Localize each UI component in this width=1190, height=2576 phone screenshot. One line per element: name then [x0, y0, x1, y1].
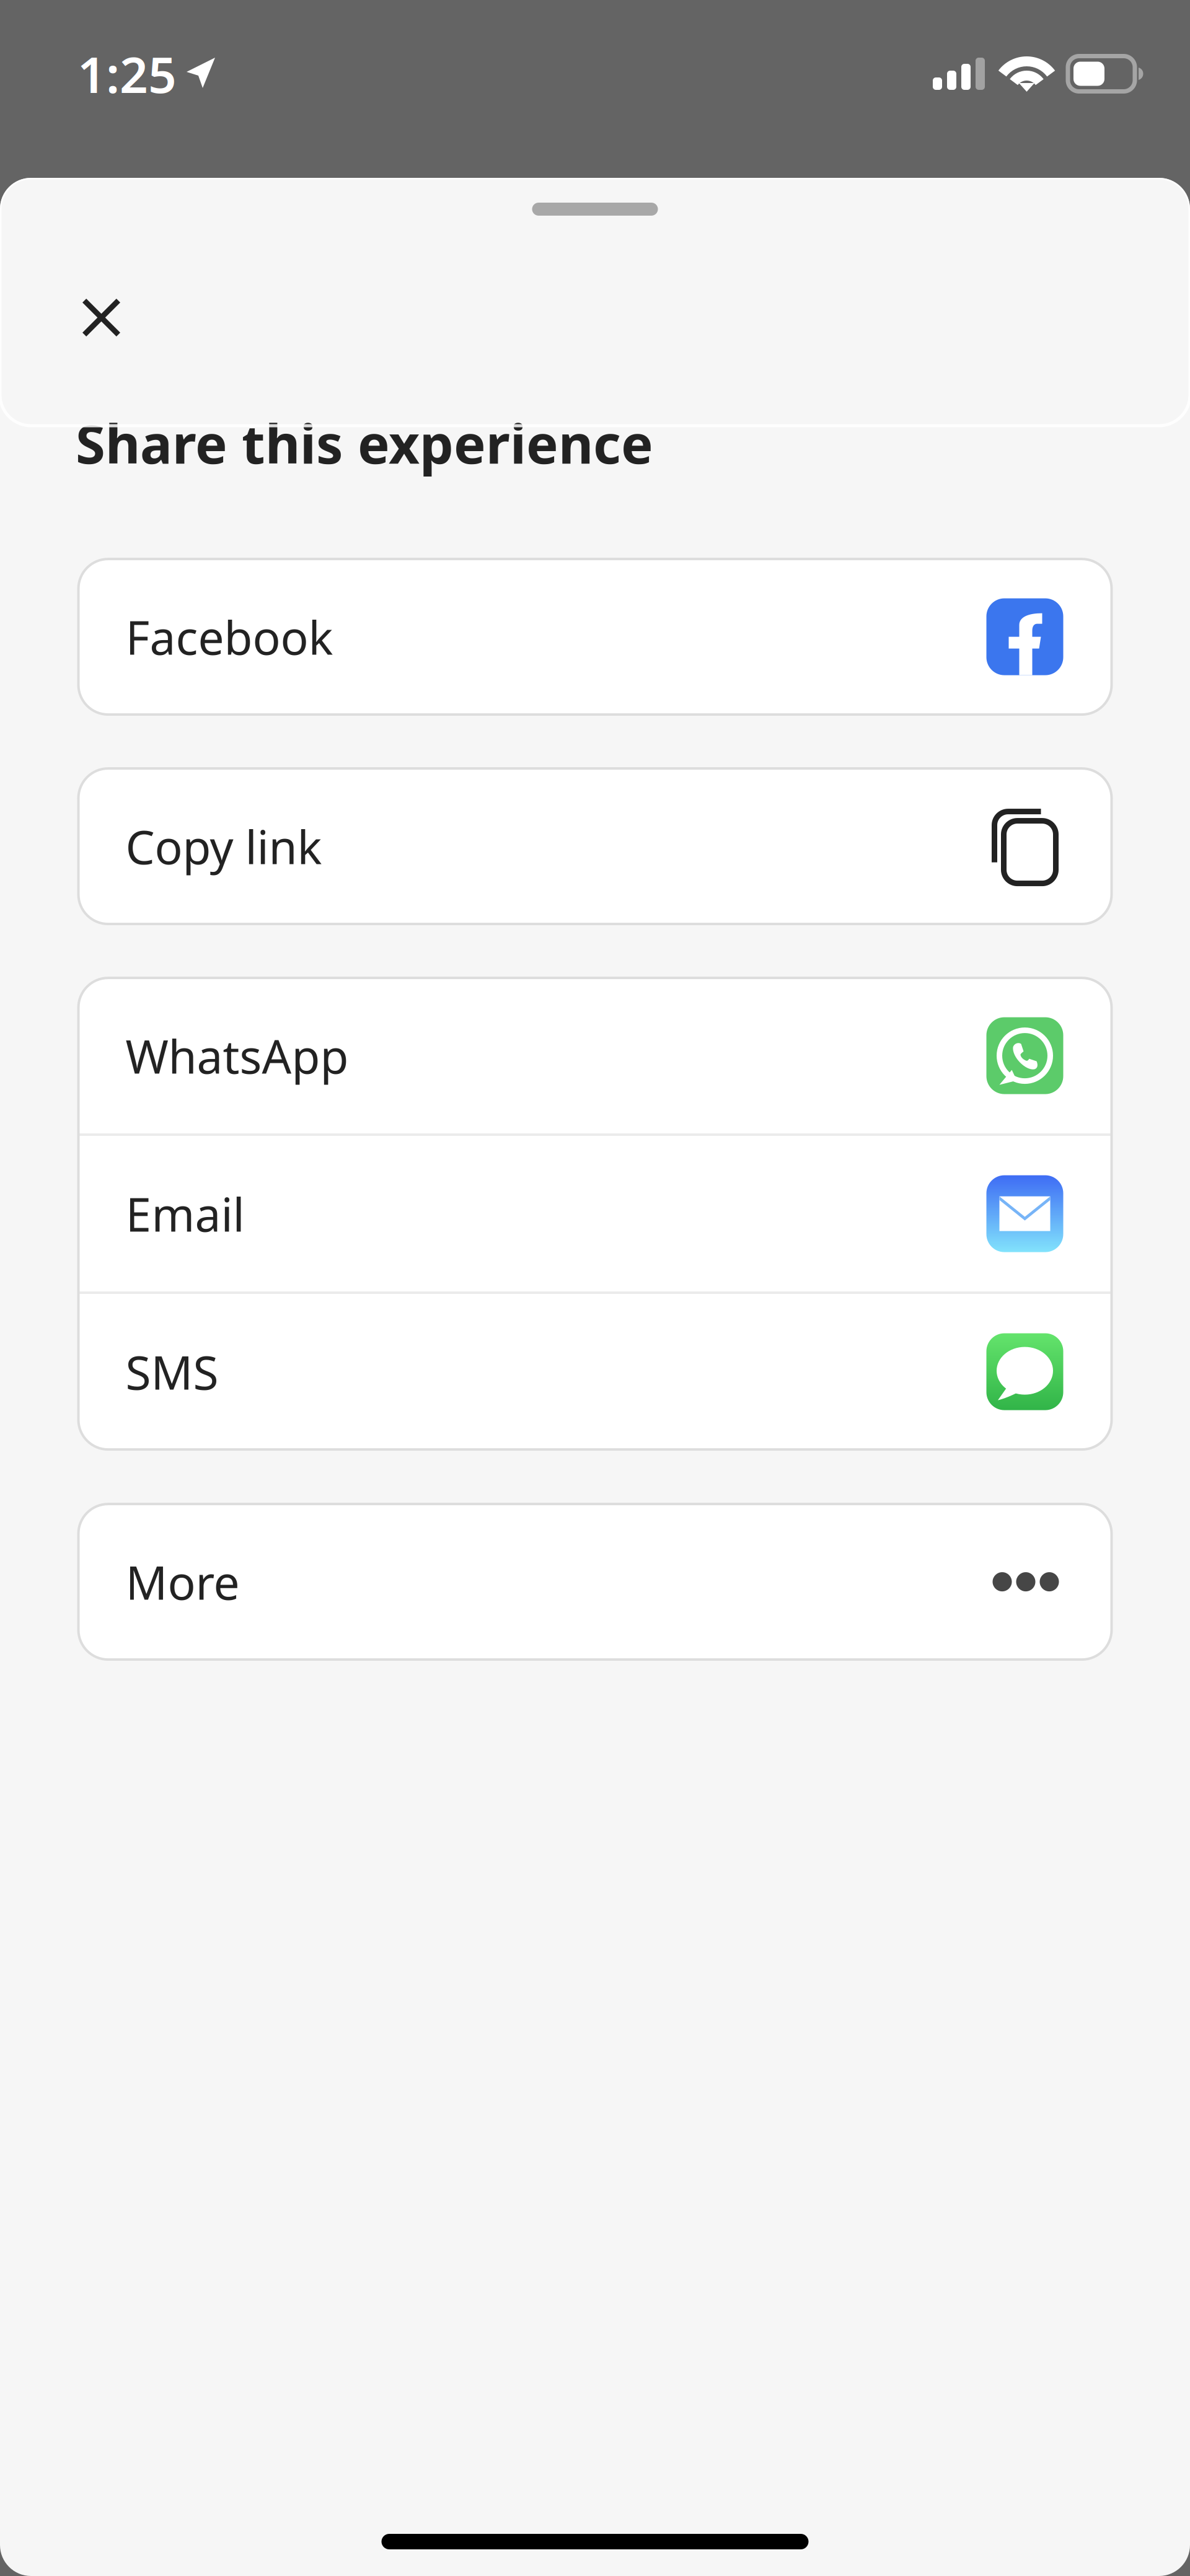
- staticText: More: [126, 1551, 240, 1613]
- button[interactable]: Facebook: [78, 559, 1112, 715]
- staticText: SMS: [126, 1341, 218, 1402]
- button[interactable]: WhatsApp: [78, 978, 1112, 1133]
- staticText: Share this experience: [76, 407, 653, 478]
- staticText: WhatsApp: [126, 1025, 349, 1086]
- staticText: 1:25: [77, 41, 177, 107]
- button[interactable]: More: [78, 1504, 1112, 1660]
- button[interactable]: SMS: [78, 1294, 1112, 1449]
- button[interactable]: Close: [76, 292, 126, 343]
- button[interactable]: Email: [78, 1136, 1112, 1291]
- button[interactable]: Copy link: [78, 768, 1112, 924]
- staticText: Facebook: [126, 606, 333, 668]
- staticText: Copy link: [126, 815, 322, 877]
- staticText: Email: [126, 1183, 245, 1244]
